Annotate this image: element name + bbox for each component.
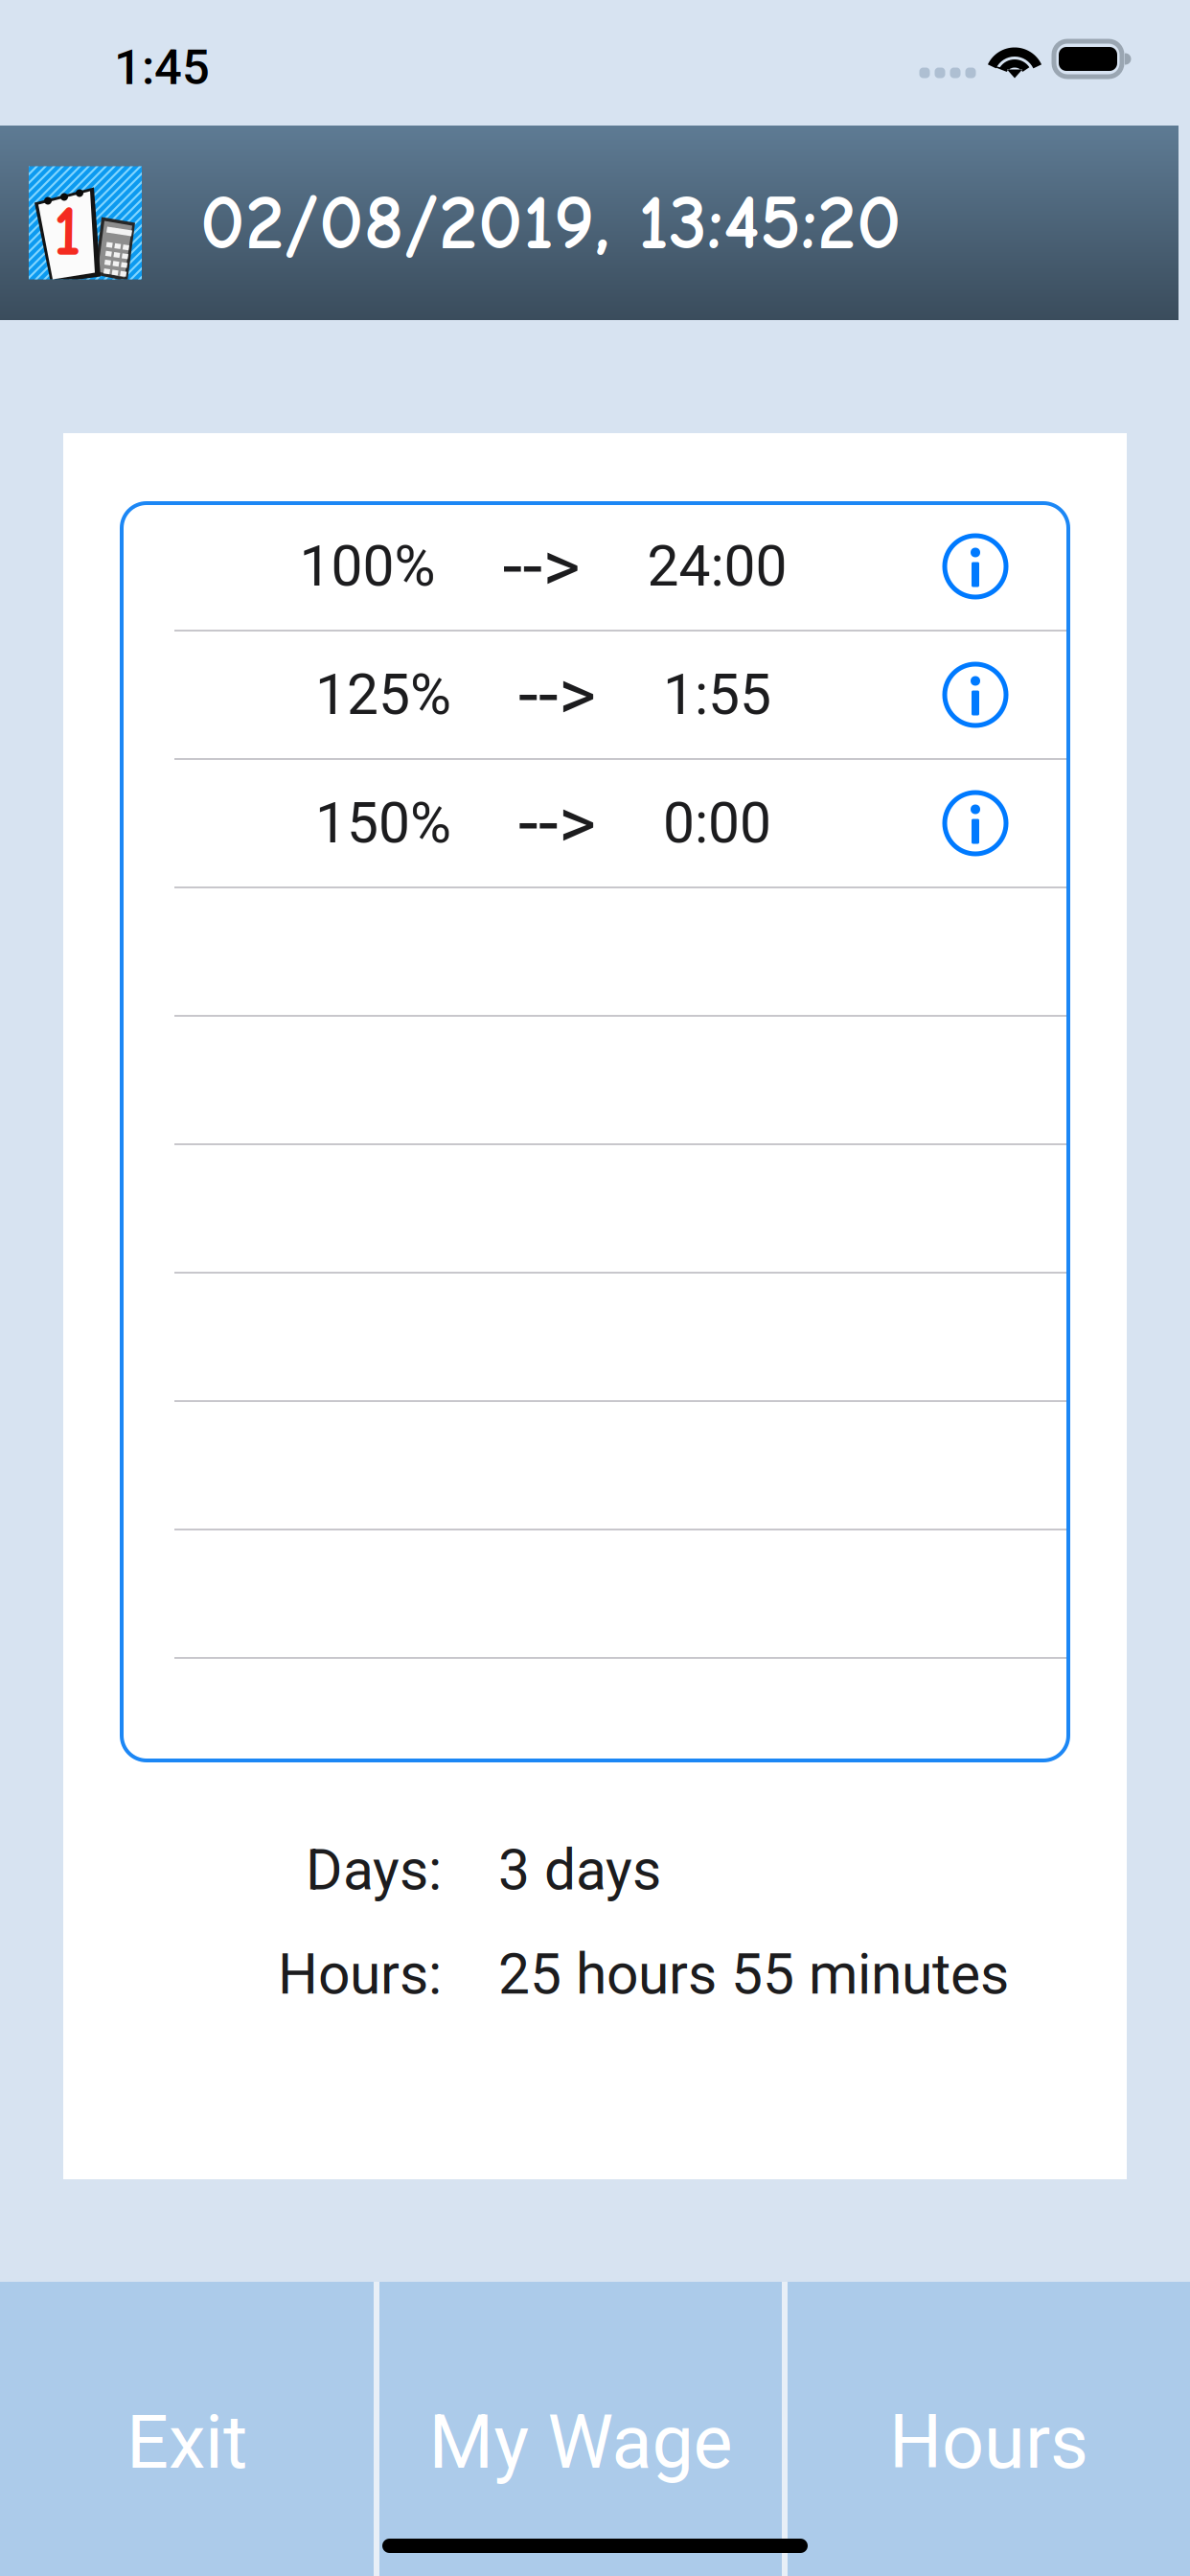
staticText: --> (503, 524, 580, 608)
button[interactable]: My Wage (379, 2282, 782, 2576)
staticText: 1:45 (114, 39, 210, 96)
button[interactable]: Info (945, 760, 1068, 886)
staticText: 1 (53, 190, 81, 273)
staticText: 0:00 (663, 790, 771, 856)
button[interactable]: Info (945, 632, 1068, 758)
button[interactable]: 100% (122, 503, 1068, 630)
staticText: 125% (315, 662, 451, 728)
staticText: Days: (306, 1837, 442, 1903)
staticText: --> (518, 781, 596, 865)
button[interactable]: Info (945, 503, 1068, 630)
staticText: Exit (126, 2399, 247, 2486)
staticText: 3 days (498, 1837, 661, 1903)
staticText: My Wage (429, 2399, 732, 2486)
button[interactable]: 125% (122, 632, 1068, 758)
button[interactable]: Hours (788, 2282, 1190, 2576)
button[interactable]: 150% (122, 760, 1068, 886)
staticText: 24:00 (647, 533, 787, 599)
button[interactable]: Exit (0, 2282, 374, 2576)
staticText: 100% (299, 533, 435, 599)
staticText: 02/08/2019, 13:45:20 (200, 178, 902, 268)
staticText: --> (518, 653, 596, 737)
staticText: 25 hours 55 minutes (498, 1941, 1009, 2007)
staticText: Hours: (278, 1941, 442, 2007)
staticText: 150% (315, 790, 451, 856)
staticText: Hours (889, 2399, 1088, 2486)
staticText: 1:55 (663, 662, 771, 728)
